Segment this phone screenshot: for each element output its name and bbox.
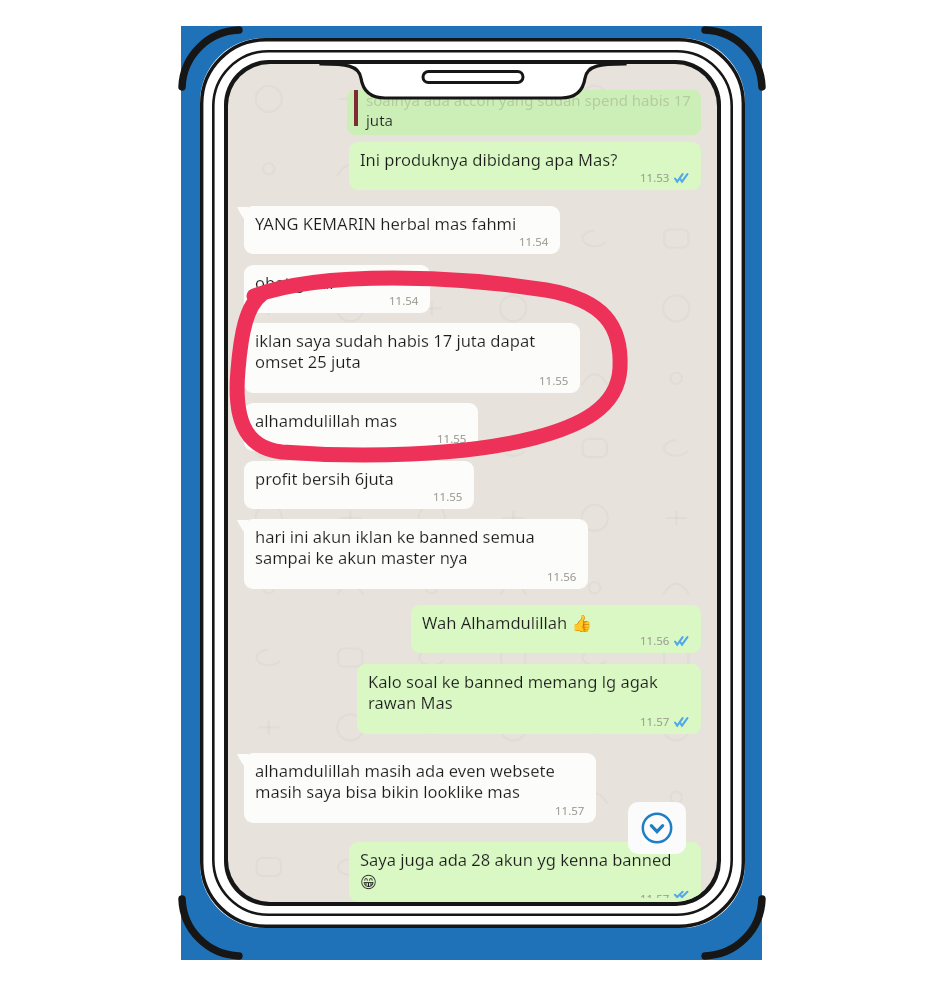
staticText: obat gatal bbox=[255, 271, 334, 293]
staticText: hari ini akun iklan ke banned semua samp… bbox=[255, 525, 577, 569]
staticText: 11.56 bbox=[547, 569, 577, 585]
staticText: Saya juga ada 28 akun yg kenna banned 😁 bbox=[360, 848, 672, 891]
button[interactable]: iklan saya sudah habis 17 juta dapat oms… bbox=[244, 323, 580, 393]
button[interactable]: Saya juga ada 28 akun yg kenna banned 😁 bbox=[349, 842, 701, 902]
button[interactable]: alhamdulillah mas bbox=[244, 403, 478, 451]
staticText: 11.55 bbox=[539, 373, 569, 389]
button[interactable]: profit bersih 6juta bbox=[244, 461, 474, 509]
button[interactable]: Wah Alhamdulillah 👍 bbox=[411, 605, 701, 653]
button[interactable]: Ini produknya dibidang apa Mas? bbox=[349, 142, 701, 190]
staticText: soalnya ada accon yang sudah spend habis… bbox=[366, 90, 691, 110]
staticText: 11.54 bbox=[389, 293, 419, 309]
staticText: Ini produknya dibidang apa Mas? bbox=[360, 148, 618, 170]
staticText: iklan saya sudah habis 17 juta dapat oms… bbox=[255, 329, 569, 373]
button[interactable]: YANG KEMARIN herbal mas fahmi bbox=[244, 206, 560, 254]
staticText: profit bersih 6juta bbox=[255, 467, 394, 489]
button[interactable]: Scroll to bottom bbox=[628, 802, 686, 854]
button[interactable]: obat gatal bbox=[244, 265, 430, 313]
button[interactable]: alhamdulillah masih ada even websete mas… bbox=[244, 753, 596, 823]
staticText: alhamdulillah masih ada even websete mas… bbox=[255, 759, 585, 803]
staticText: 11.57 bbox=[555, 803, 585, 819]
staticText: 11.53 bbox=[640, 170, 670, 186]
button[interactable]: hari ini akun iklan ke banned semua samp… bbox=[244, 519, 588, 589]
staticText: Wah Alhamdulillah 👍 bbox=[422, 611, 593, 633]
staticText: 11.55 bbox=[433, 489, 463, 505]
staticText: 11.55 bbox=[437, 431, 467, 447]
staticText: 11.56 bbox=[640, 633, 670, 649]
staticText: alhamdulillah mas bbox=[255, 409, 398, 431]
button[interactable]: soalnya ada accon yang sudah spend habis… bbox=[347, 90, 701, 135]
button[interactable]: Kalo soal ke banned memang lg agak rawan… bbox=[357, 664, 701, 734]
staticText: YANG KEMARIN herbal mas fahmi bbox=[255, 212, 517, 234]
staticText: 11.54 bbox=[519, 234, 549, 250]
staticText: Kalo soal ke banned memang lg agak rawan… bbox=[368, 670, 690, 714]
staticText: juta bbox=[366, 110, 393, 130]
staticText: 11.57 bbox=[640, 714, 670, 730]
staticText: 11.57 bbox=[640, 891, 670, 898]
